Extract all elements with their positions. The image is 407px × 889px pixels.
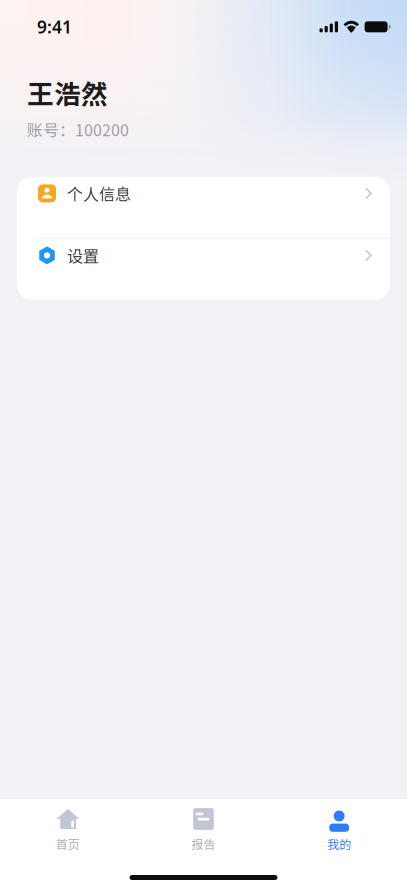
staticText: 王浩然 (27, 73, 108, 112)
button[interactable]: 设置 (17, 239, 390, 300)
staticText: 设置 (67, 244, 99, 267)
staticText: 我的 (327, 835, 351, 852)
button[interactable]: 报告 (136, 799, 271, 864)
staticText: 账号：100200 (27, 118, 129, 141)
staticText: 9:41 (37, 15, 72, 39)
staticText: 报告 (191, 835, 215, 852)
button[interactable]: 我的 (271, 799, 407, 864)
staticText: 个人信息 (67, 182, 131, 205)
staticText: 首页 (56, 835, 80, 852)
button[interactable]: 个人信息 (17, 177, 390, 238)
button[interactable]: 首页 (0, 799, 136, 864)
